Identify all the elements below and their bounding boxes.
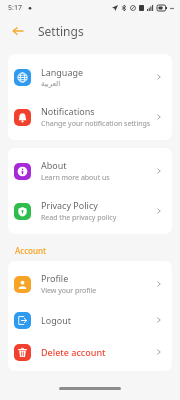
staticText: Read the privacy policy — [41, 213, 117, 223]
staticText: Notifications — [41, 105, 95, 117]
staticText: Language — [41, 66, 84, 78]
staticText: Profile — [41, 272, 69, 284]
button[interactable]: Back — [6, 19, 30, 43]
staticText: 5:17 — [8, 3, 22, 13]
staticText: Delete account — [41, 346, 106, 358]
button[interactable]: Delete account — [8, 336, 172, 368]
staticText: Account — [15, 245, 47, 256]
button[interactable]: About — [8, 151, 172, 191]
button[interactable]: Privacy Policy — [8, 191, 172, 231]
staticText: Learn more about us — [41, 173, 110, 183]
staticText: Settings — [38, 23, 84, 39]
staticText: العربية — [41, 80, 61, 88]
staticText: Logout — [41, 314, 71, 326]
button[interactable]: Language — [8, 57, 172, 97]
button[interactable]: Logout — [8, 304, 172, 336]
staticText: View your profile — [41, 286, 97, 296]
button[interactable]: Notifications — [8, 97, 172, 137]
staticText: Change your notification settings — [41, 119, 151, 129]
staticText: About — [41, 159, 67, 171]
staticText: Privacy Policy — [41, 199, 98, 211]
button[interactable]: Profile — [8, 264, 172, 304]
